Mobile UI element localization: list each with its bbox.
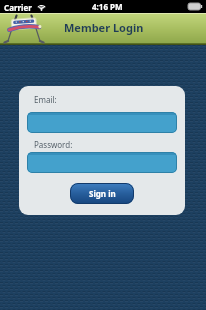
staticText: Carrier (4, 2, 32, 13)
staticText: 4:16 PM (92, 1, 123, 12)
staticText: Password: (34, 139, 73, 150)
staticText: Email: (34, 94, 57, 105)
button[interactable] (27, 152, 177, 173)
button[interactable]: Sign in (70, 183, 134, 204)
staticText: Sign in (89, 188, 116, 199)
staticText: Member Login (64, 20, 144, 35)
button[interactable] (27, 112, 177, 133)
